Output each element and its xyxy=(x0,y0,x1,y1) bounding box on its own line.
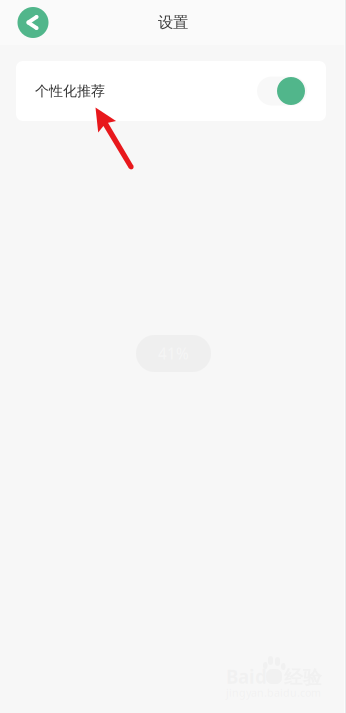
staticText: 个性化推荐 xyxy=(35,82,105,100)
button[interactable]: 个性化推荐 xyxy=(16,61,326,121)
staticText: 设置 xyxy=(158,13,188,32)
button[interactable]: Back xyxy=(11,0,55,44)
